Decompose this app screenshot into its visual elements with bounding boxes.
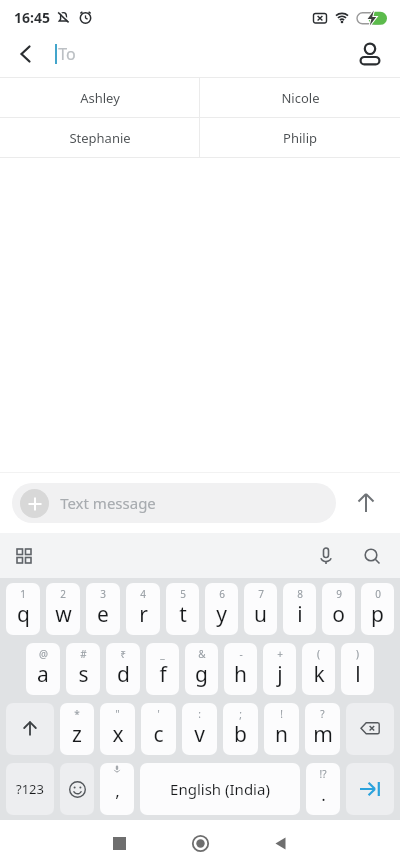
button[interactable] bbox=[350, 487, 382, 519]
button[interactable]: ' bbox=[141, 703, 176, 755]
button[interactable]: " bbox=[100, 703, 135, 755]
button[interactable]: 5 bbox=[166, 583, 199, 635]
button[interactable]: , bbox=[100, 763, 134, 815]
staticText: 16:45 bbox=[14, 8, 50, 27]
button[interactable]: 3 bbox=[86, 583, 120, 635]
button[interactable]: * bbox=[60, 703, 94, 755]
staticText: d bbox=[117, 660, 130, 689]
staticText: ₹ bbox=[120, 647, 126, 661]
staticText: # bbox=[80, 647, 87, 661]
staticText: . bbox=[321, 783, 326, 806]
button[interactable]: ) bbox=[341, 643, 374, 695]
staticText: ' bbox=[157, 707, 160, 721]
staticText: Nicole bbox=[281, 89, 320, 107]
button[interactable] bbox=[8, 540, 40, 572]
button[interactable]: ; bbox=[223, 703, 258, 755]
button[interactable]: Text message bbox=[12, 483, 336, 523]
staticText: j bbox=[277, 660, 283, 689]
staticText: ( bbox=[317, 647, 320, 661]
button[interactable]: Ashley bbox=[0, 78, 199, 117]
button[interactable]: & bbox=[185, 643, 218, 695]
button[interactable]: _ bbox=[146, 643, 179, 695]
staticText: a bbox=[37, 660, 49, 689]
staticText: ; bbox=[239, 707, 242, 721]
staticText: n bbox=[275, 720, 288, 749]
button[interactable]: 2 bbox=[46, 583, 80, 635]
button[interactable] bbox=[356, 540, 388, 572]
button[interactable] bbox=[346, 703, 394, 755]
button[interactable]: : bbox=[182, 703, 217, 755]
button[interactable] bbox=[60, 763, 94, 815]
staticText: * bbox=[74, 707, 80, 721]
staticText: " bbox=[115, 707, 120, 721]
staticText: _ bbox=[160, 647, 165, 661]
button[interactable] bbox=[352, 36, 388, 72]
staticText: : bbox=[198, 707, 201, 721]
button[interactable] bbox=[8, 36, 44, 72]
staticText: h bbox=[234, 660, 247, 689]
button[interactable]: ? bbox=[305, 703, 340, 755]
button[interactable]: 4 bbox=[126, 583, 160, 635]
staticText: y bbox=[216, 600, 227, 629]
staticText: 4 bbox=[140, 587, 146, 601]
button[interactable]: English (India) bbox=[140, 763, 300, 815]
button[interactable]: ( bbox=[302, 643, 335, 695]
button[interactable]: + bbox=[263, 643, 296, 695]
button[interactable] bbox=[346, 763, 394, 815]
staticText: g bbox=[195, 660, 208, 689]
button[interactable]: - bbox=[224, 643, 257, 695]
staticText: Stephanie bbox=[69, 129, 131, 147]
staticText: i bbox=[297, 600, 303, 629]
staticText: q bbox=[17, 600, 30, 629]
button[interactable]: # bbox=[66, 643, 100, 695]
staticText: u bbox=[254, 600, 267, 629]
staticText: f bbox=[159, 660, 167, 689]
button[interactable]: 9 bbox=[322, 583, 355, 635]
button[interactable]: 6 bbox=[205, 583, 238, 635]
staticText: x bbox=[112, 720, 124, 749]
staticText: e bbox=[97, 600, 109, 629]
staticText: 0 bbox=[375, 587, 381, 601]
staticText: ? bbox=[320, 707, 325, 721]
button[interactable]: Stephanie bbox=[0, 118, 199, 157]
staticText: 2 bbox=[60, 587, 66, 601]
button[interactable] bbox=[182, 825, 218, 861]
staticText: w bbox=[55, 600, 72, 629]
button[interactable]: 8 bbox=[283, 583, 316, 635]
button[interactable]: 1 bbox=[6, 583, 40, 635]
button[interactable]: @ bbox=[26, 643, 60, 695]
button[interactable]: !? bbox=[306, 763, 340, 815]
staticText: l bbox=[355, 660, 361, 689]
button[interactable]: 0 bbox=[361, 583, 394, 635]
staticText: c bbox=[153, 720, 164, 749]
button[interactable] bbox=[101, 825, 137, 861]
button[interactable]: Philip bbox=[200, 118, 400, 157]
staticText: 5 bbox=[180, 587, 186, 601]
staticText: z bbox=[72, 720, 82, 749]
button[interactable]: 7 bbox=[244, 583, 277, 635]
button[interactable]: ?123 bbox=[6, 763, 54, 815]
staticText: Ashley bbox=[80, 89, 120, 107]
button[interactable]: Nicole bbox=[200, 78, 400, 117]
staticText: 6 bbox=[219, 587, 225, 601]
button[interactable] bbox=[310, 540, 342, 572]
staticText: v bbox=[194, 720, 205, 749]
staticText: - bbox=[239, 647, 243, 661]
staticText: Text message bbox=[60, 493, 156, 513]
staticText: ! bbox=[280, 707, 283, 721]
button[interactable]: ₹ bbox=[106, 643, 140, 695]
button[interactable] bbox=[6, 703, 54, 755]
button[interactable] bbox=[262, 825, 298, 861]
staticText: To bbox=[58, 43, 76, 65]
staticText: & bbox=[198, 647, 206, 661]
staticText: @ bbox=[39, 647, 48, 661]
staticText: t bbox=[179, 600, 187, 629]
staticText: m bbox=[313, 720, 333, 749]
button[interactable]: ! bbox=[264, 703, 299, 755]
staticText: ?123 bbox=[16, 780, 44, 798]
staticText: 8 bbox=[297, 587, 303, 601]
staticText: English (India) bbox=[170, 779, 270, 799]
staticText: !? bbox=[319, 767, 327, 781]
staticText: b bbox=[234, 720, 247, 749]
staticText: 1 bbox=[20, 587, 26, 601]
